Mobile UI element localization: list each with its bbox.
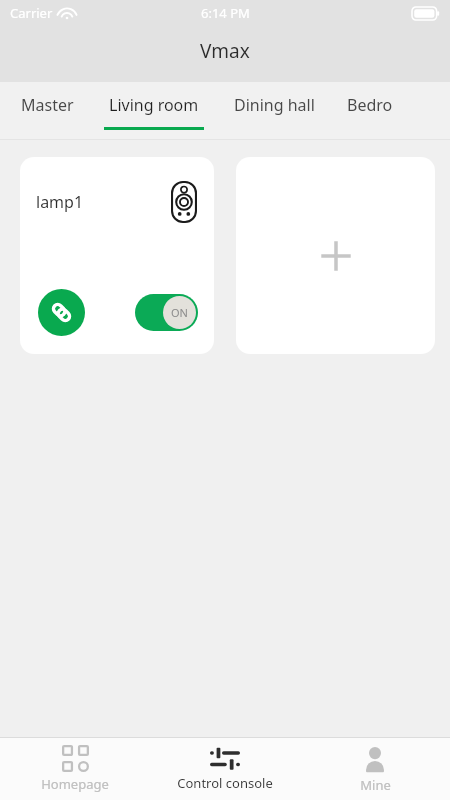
staticText: 6:14 PM bbox=[201, 4, 250, 22]
staticText: Vmax bbox=[200, 38, 250, 64]
staticText: Homepage bbox=[41, 775, 109, 793]
staticText: Dining hall bbox=[234, 94, 315, 116]
other: Remote control bbox=[171, 181, 197, 223]
button[interactable]: Dining hall bbox=[232, 82, 317, 127]
staticText: Mine bbox=[360, 776, 391, 794]
staticText: Control console bbox=[177, 774, 273, 792]
staticText: Bedro bbox=[347, 94, 393, 116]
staticText: Living room bbox=[109, 94, 199, 116]
button[interactable]: Mine bbox=[300, 740, 450, 799]
button[interactable]: Power toggle, on bbox=[135, 294, 198, 331]
button[interactable]: Living room bbox=[104, 82, 204, 130]
button[interactable]: lamp1 bbox=[20, 157, 214, 354]
button[interactable]: Homepage bbox=[0, 740, 150, 798]
staticText: ON bbox=[171, 305, 188, 320]
button[interactable]: Control console bbox=[150, 741, 300, 797]
button[interactable]: Bedro bbox=[345, 82, 395, 127]
staticText: lamp1 bbox=[36, 191, 84, 213]
staticText: Carrier bbox=[10, 4, 53, 22]
button[interactable]: Master bbox=[19, 82, 76, 127]
button[interactable]: Add device bbox=[236, 157, 435, 354]
staticText: Master bbox=[21, 94, 74, 116]
button[interactable]: Link device bbox=[38, 289, 85, 336]
